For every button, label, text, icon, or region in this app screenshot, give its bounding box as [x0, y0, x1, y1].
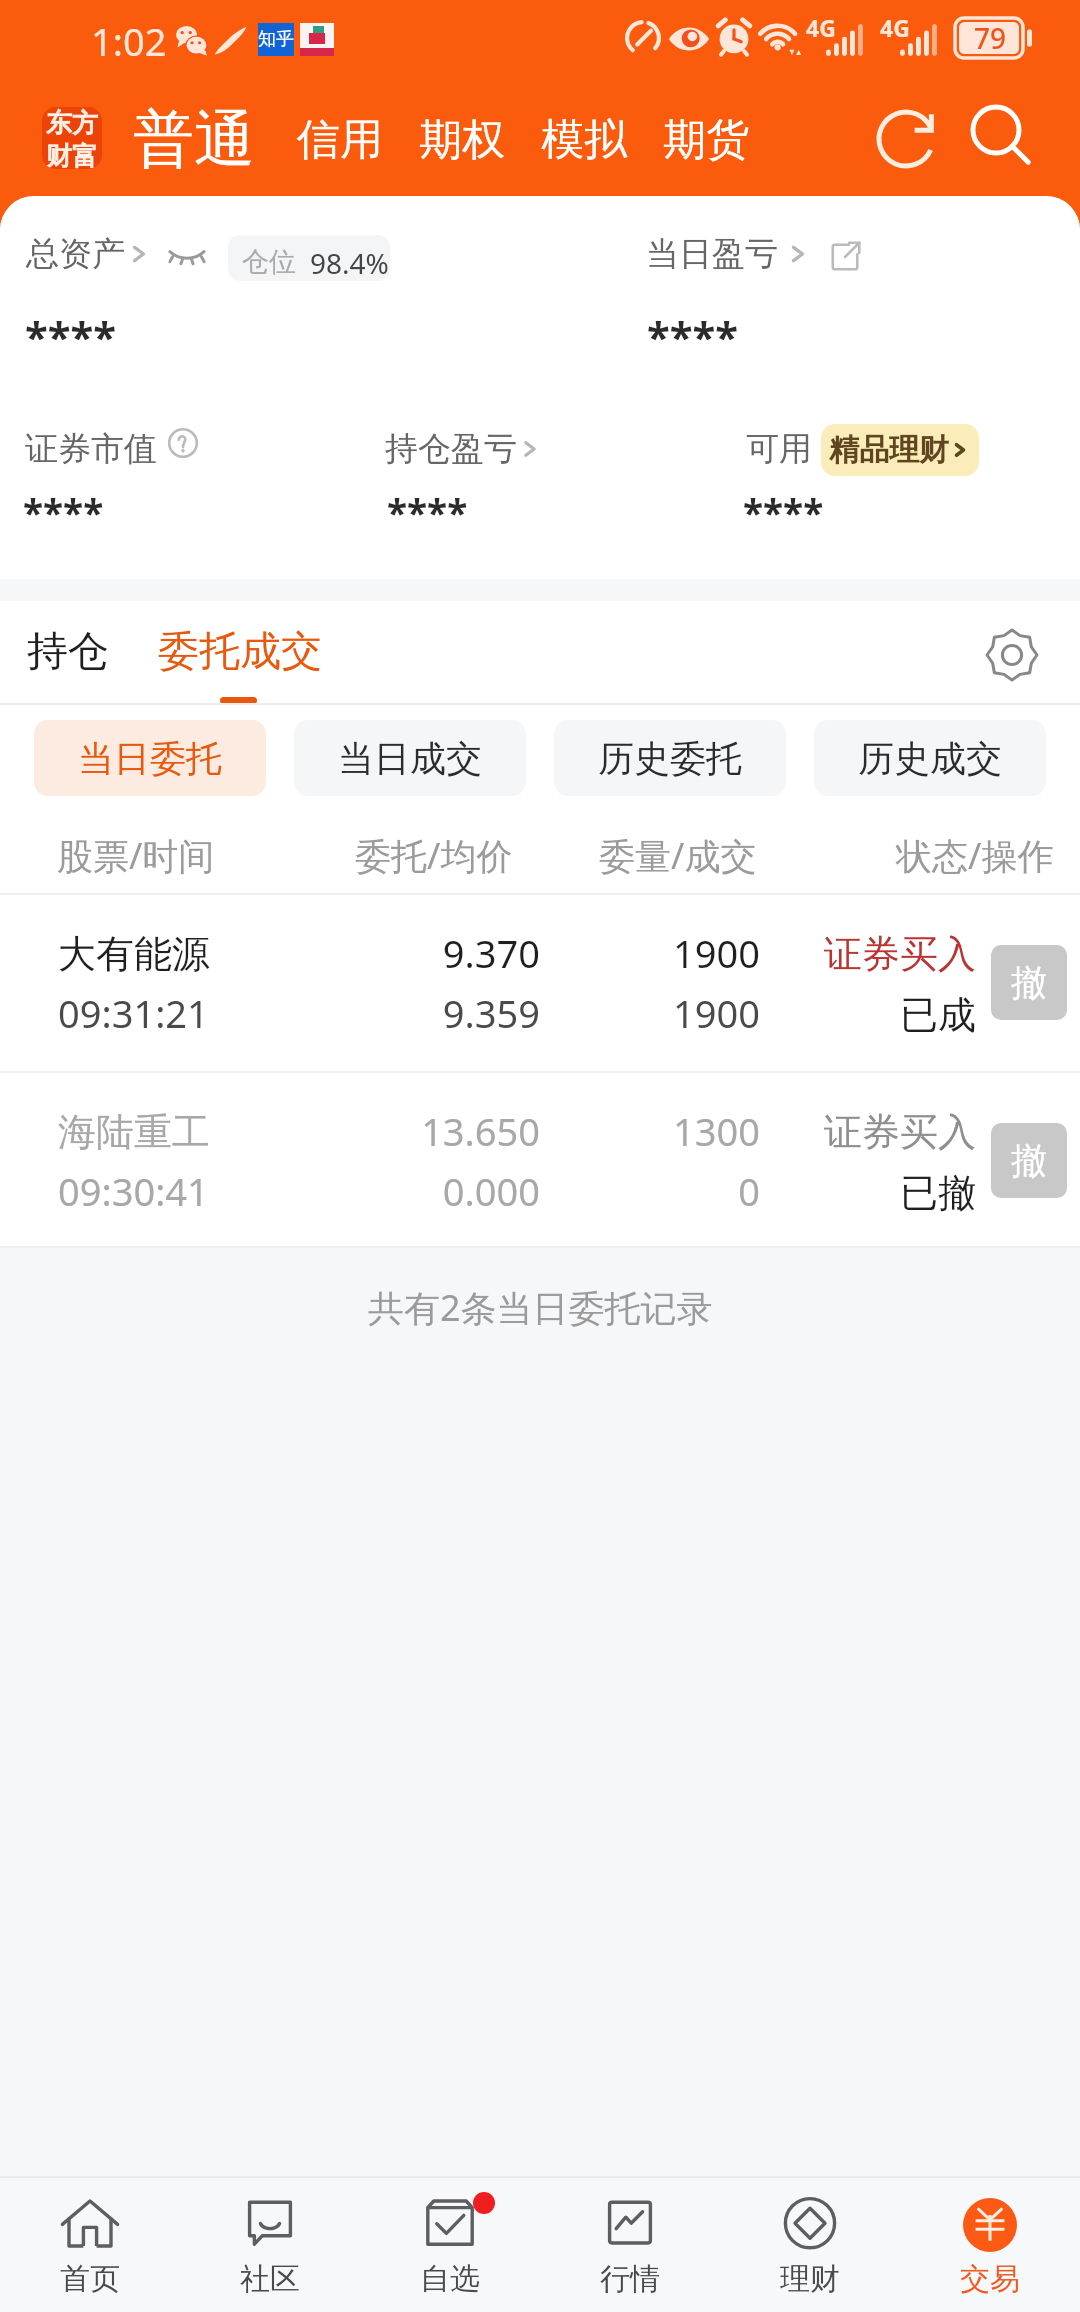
- staticText: 行情: [600, 2260, 660, 2298]
- button[interactable]: 委托成交: [144, 616, 336, 688]
- button[interactable]: 行情: [540, 2176, 720, 2312]
- button[interactable]: 自选: [360, 2176, 540, 2312]
- button[interactable]: 期货: [663, 113, 749, 167]
- staticText: 期货: [663, 113, 749, 167]
- staticText: 社区: [240, 2260, 300, 2298]
- staticText: 首页: [60, 2260, 120, 2298]
- button[interactable]: 仓位: [228, 235, 390, 281]
- button[interactable]: 海陆重工: [0, 1073, 1080, 1248]
- button[interactable]: 交易: [900, 2176, 1080, 2312]
- staticText: ****: [387, 487, 468, 537]
- button[interactable]: 历史成交: [814, 720, 1046, 796]
- staticText: 已成: [900, 991, 976, 1039]
- button[interactable]: 撤: [991, 1123, 1067, 1198]
- staticText: 9.370: [442, 927, 540, 979]
- staticText: 历史委托: [598, 736, 742, 781]
- staticText: 委托成交: [158, 626, 322, 678]
- button[interactable]: 总资产: [26, 233, 153, 275]
- staticText: 0: [738, 1165, 760, 1217]
- button[interactable]: 社区: [180, 2176, 360, 2312]
- button[interactable]: Settings: [980, 623, 1044, 687]
- staticText: 状态/操作: [896, 831, 1054, 880]
- button[interactable]: 理财: [720, 2176, 900, 2312]
- staticText: 东方: [46, 107, 98, 140]
- staticText: 1:02: [91, 15, 167, 67]
- staticText: 98.4%: [310, 244, 389, 281]
- button[interactable]: 东方: [42, 107, 102, 169]
- staticText: 大有能源: [58, 930, 210, 978]
- button[interactable]: 当日盈亏: [646, 233, 812, 275]
- button[interactable]: 首页: [0, 2176, 180, 2312]
- staticText: 4G: [880, 12, 910, 43]
- staticText: 1900: [673, 927, 760, 979]
- staticText: 持仓盈亏: [385, 428, 517, 470]
- button[interactable]: 大有能源: [0, 895, 1080, 1073]
- staticText: 财富: [46, 140, 98, 169]
- button[interactable]: 模拟: [541, 113, 627, 167]
- staticText: 4G: [806, 12, 836, 43]
- button[interactable]: Refresh: [869, 99, 945, 175]
- staticText: 精品理财: [829, 431, 949, 469]
- button[interactable]: 当日成交: [294, 720, 526, 796]
- staticText: ****: [743, 487, 824, 537]
- staticText: 委托/均价: [355, 831, 513, 880]
- button[interactable]: 持仓: [13, 616, 123, 688]
- button[interactable]: 精品理财: [821, 424, 979, 476]
- staticText: 理财: [780, 2260, 840, 2298]
- staticText: 历史成交: [858, 736, 1002, 781]
- staticText: 普通: [133, 101, 255, 178]
- staticText: ****: [25, 307, 117, 364]
- staticText: 可用: [746, 428, 812, 470]
- staticText: 0.000: [442, 1165, 540, 1217]
- staticText: 79: [974, 19, 1007, 57]
- staticText: 委量/成交: [599, 831, 757, 880]
- staticText: 共有2条当日委托记录: [368, 1283, 713, 1332]
- staticText: 交易: [960, 2260, 1020, 2298]
- staticText: 当日成交: [338, 736, 482, 781]
- staticText: 09:31:21: [58, 987, 209, 1039]
- button[interactable]: 持仓盈亏: [385, 428, 543, 470]
- staticText: 股票/时间: [57, 831, 215, 880]
- staticText: 当日盈亏: [646, 233, 778, 275]
- button[interactable]: 证券市值: [25, 428, 157, 470]
- staticText: ****: [23, 487, 104, 537]
- staticText: 自选: [420, 2260, 480, 2298]
- staticText: 总资产: [26, 233, 125, 275]
- staticText: ****: [647, 307, 739, 364]
- staticText: 持仓: [27, 626, 109, 678]
- staticText: 撤: [1011, 960, 1047, 1005]
- staticText: 海陆重工: [58, 1108, 210, 1156]
- staticText: 已撤: [900, 1169, 976, 1217]
- button[interactable]: 普通: [133, 101, 255, 178]
- button[interactable]: 期权: [419, 113, 505, 167]
- button[interactable]: 撤: [991, 945, 1067, 1020]
- staticText: 13.650: [421, 1105, 540, 1157]
- button[interactable]: 当日委托: [34, 720, 266, 796]
- staticText: 期权: [419, 113, 505, 167]
- staticText: 撤: [1011, 1138, 1047, 1183]
- staticText: 1300: [673, 1105, 760, 1157]
- staticText: 09:30:41: [58, 1165, 209, 1217]
- staticText: 仓位: [242, 245, 296, 279]
- staticText: 当日委托: [78, 736, 222, 781]
- button[interactable]: 信用: [297, 113, 383, 167]
- staticText: 知乎: [258, 28, 294, 51]
- button[interactable]: 历史委托: [554, 720, 786, 796]
- staticText: 模拟: [541, 113, 627, 167]
- staticText: 证券买入: [824, 930, 976, 978]
- button[interactable]: Search: [962, 97, 1038, 173]
- staticText: 证券买入: [824, 1108, 976, 1156]
- staticText: 1900: [673, 987, 760, 1039]
- staticText: 9.359: [442, 987, 540, 1039]
- staticText: 信用: [297, 113, 383, 167]
